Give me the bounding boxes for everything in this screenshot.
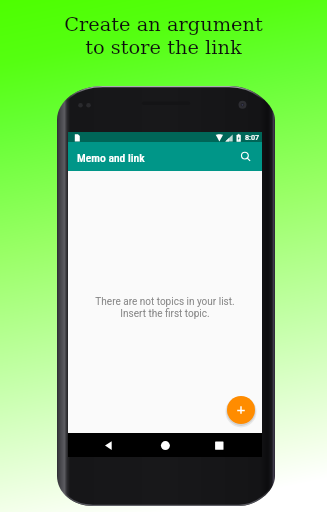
staticText: Create an argument to store the link [0,13,327,58]
staticText: 8:07 [245,133,260,141]
button[interactable]: Recent apps [207,433,233,457]
button[interactable]: Back [96,433,122,457]
staticText: There are not topics in your list. Inser… [68,296,262,320]
button[interactable]: Search [232,142,260,171]
staticText: Memo and link [77,151,145,165]
button[interactable]: Add topic [227,396,255,424]
button[interactable]: Home [153,433,179,457]
